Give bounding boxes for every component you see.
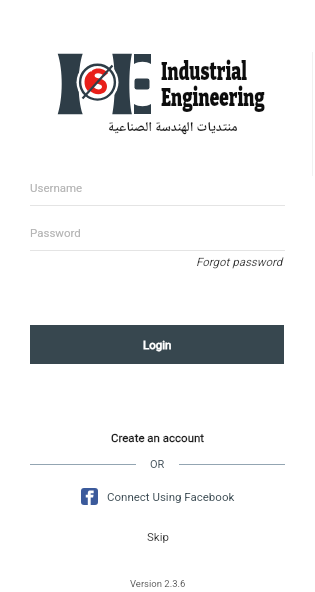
staticText: Industrial Engineering — [161, 57, 265, 112]
button[interactable]: Facebook — [0, 486, 315, 507]
staticText: Login — [143, 338, 172, 351]
button[interactable]: Skip — [145, 528, 171, 545]
button[interactable]: Username — [30, 170, 285, 204]
staticText: Connect Using Facebook — [107, 490, 235, 503]
button[interactable]: Login — [30, 325, 284, 364]
staticText: Password — [30, 226, 81, 239]
button[interactable]: Forgot password — [194, 253, 285, 270]
staticText: Username — [30, 181, 83, 194]
staticText: Version 2.3.6 — [130, 578, 186, 589]
other: Facebook — [81, 488, 98, 505]
staticText: OR — [150, 458, 165, 471]
button[interactable]: Password — [30, 215, 285, 249]
staticText: منتديات الهندسة الصناعية — [108, 117, 238, 140]
button[interactable]: Create an account — [109, 429, 207, 446]
